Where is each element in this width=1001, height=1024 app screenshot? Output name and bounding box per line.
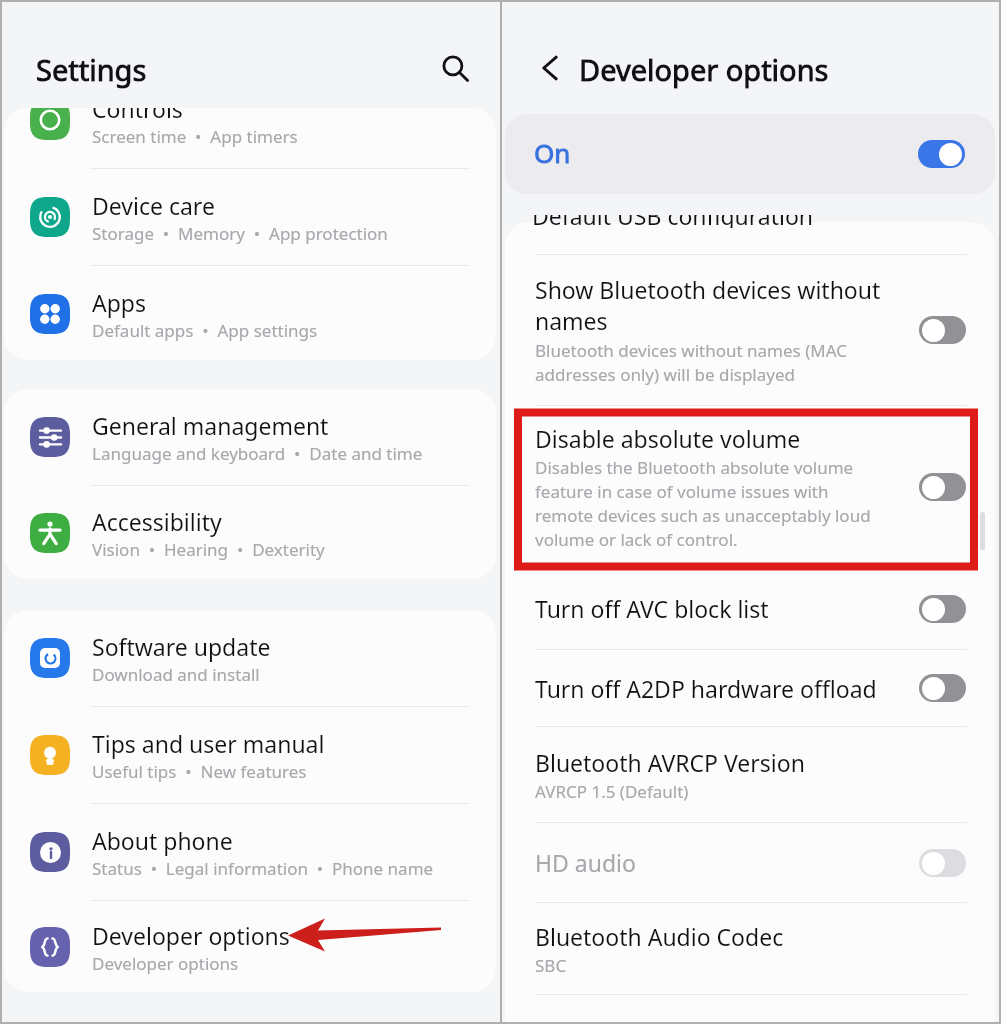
staticText: Bluetooth Audio Codec (535, 921, 784, 952)
staticText: Download and install (92, 663, 260, 686)
staticText: Turn off AVC block list (535, 593, 769, 624)
button[interactable]: Software update (4, 610, 496, 706)
staticText: On (534, 135, 571, 170)
staticText: HD audio (535, 847, 636, 878)
button[interactable]: HD audio (505, 823, 995, 902)
button[interactable]: About phone (4, 804, 496, 900)
staticText: Developer options (579, 50, 829, 89)
staticText: Disable absolute volume (535, 423, 801, 454)
button[interactable]: Apps (4, 266, 496, 360)
button[interactable]: Tips and user manual (4, 707, 496, 803)
staticText: Vision • Hearing • Dexterity (92, 538, 325, 561)
staticText: Useful tips • New features (92, 760, 307, 783)
button[interactable]: Disable absolute volume (505, 406, 995, 567)
staticText: Status • Legal information • Phone name (92, 857, 434, 880)
staticText: Screen time • App timers (92, 125, 298, 148)
button[interactable]: Toggle (919, 473, 966, 501)
staticText: Developer options (92, 952, 239, 975)
button[interactable]: General management (4, 389, 496, 485)
button[interactable]: Accessibility (4, 485, 496, 579)
button[interactable]: Turn off AVC block list (505, 568, 995, 649)
button[interactable]: Developer options (4, 899, 496, 992)
staticText: Disables the Bluetooth absolute volume f… (535, 456, 887, 551)
staticText: Default apps • App settings (92, 319, 318, 342)
staticText: General management (92, 410, 329, 441)
staticText: Turn off A2DP hardware offload (535, 673, 877, 704)
button[interactable]: Turn off A2DP hardware offload (505, 650, 995, 726)
button[interactable]: Toggle (919, 316, 966, 344)
staticText: Apps (92, 287, 147, 318)
button[interactable]: Bluetooth AVRCP Version (505, 727, 995, 822)
button[interactable]: Toggle (919, 849, 966, 877)
staticText: Controls (92, 108, 183, 124)
staticText: Show Bluetooth devices without names (535, 274, 887, 337)
staticText: About phone (92, 825, 233, 856)
button[interactable]: Toggle (919, 595, 966, 623)
button[interactable]: Show Bluetooth devices without names (505, 255, 995, 405)
staticText: Storage • Memory • App protection (92, 222, 388, 245)
staticText: Software update (92, 631, 271, 662)
staticText: Settings (36, 50, 147, 89)
button[interactable]: Search (432, 45, 478, 91)
staticText: Bluetooth AVRCP Version (535, 747, 805, 778)
button[interactable]: Bluetooth Audio Codec (505, 903, 995, 994)
staticText: Default USB configuration (532, 215, 814, 228)
staticText: SBC (535, 954, 567, 977)
button[interactable]: Toggle (918, 140, 965, 168)
staticText: Tips and user manual (92, 728, 325, 759)
button[interactable]: Toggle (919, 674, 966, 702)
staticText: Device care (92, 190, 215, 221)
staticText: Language and keyboard • Date and time (92, 442, 423, 465)
button[interactable]: Controls (4, 108, 496, 168)
button[interactable]: Device care (4, 169, 496, 265)
button[interactable]: On (505, 114, 995, 194)
staticText: Bluetooth devices without names (MAC add… (535, 339, 887, 386)
staticText: AVRCP 1.5 (Default) (535, 780, 689, 803)
staticText: Accessibility (92, 506, 222, 537)
staticText: Developer options (92, 920, 290, 951)
button[interactable]: Back (526, 44, 574, 92)
